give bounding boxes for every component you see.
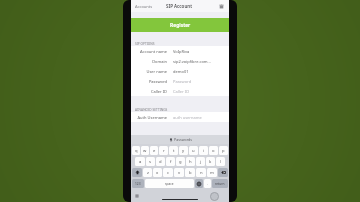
button[interactable]: space xyxy=(145,179,194,188)
staticText: Register xyxy=(170,22,191,29)
staticText: o xyxy=(212,148,215,154)
staticText: auth username xyxy=(173,115,202,120)
staticText: i xyxy=(203,148,205,154)
staticText: q xyxy=(135,148,138,154)
staticText: 123 xyxy=(135,182,141,186)
staticText: Account name xyxy=(140,49,167,54)
staticText: h xyxy=(189,159,192,165)
staticText: Password xyxy=(148,79,167,84)
button[interactable]: t xyxy=(169,146,178,155)
button[interactable]: Password xyxy=(131,76,229,86)
staticText: r xyxy=(163,148,165,154)
button[interactable]: g xyxy=(176,157,185,166)
staticText: k xyxy=(209,159,212,165)
staticText: Caller ID xyxy=(150,89,167,94)
button[interactable]: User name xyxy=(131,66,229,76)
staticText: w xyxy=(143,148,147,154)
staticText: return xyxy=(215,182,225,186)
button[interactable]: Dictation xyxy=(210,192,219,201)
staticText: Domain xyxy=(152,59,167,64)
button[interactable]: y xyxy=(179,146,188,155)
button[interactable]: k xyxy=(206,157,215,166)
staticText: Auth Username xyxy=(137,115,167,120)
button[interactable]: Emoji xyxy=(195,179,203,188)
staticText: User name xyxy=(146,69,167,74)
button[interactable]: f xyxy=(166,157,175,166)
button[interactable]: m xyxy=(207,168,217,177)
staticText: ADVANCED SETTINGS xyxy=(135,108,168,112)
staticText: SIP Account xyxy=(166,3,192,9)
button[interactable]: . xyxy=(204,179,211,188)
button[interactable]: n xyxy=(196,168,206,177)
staticText: Password xyxy=(173,79,192,84)
button[interactable]: a xyxy=(135,157,145,166)
button[interactable]: Account name xyxy=(131,46,229,56)
staticText: s xyxy=(149,159,152,165)
button[interactable]: u xyxy=(189,146,198,155)
button[interactable]: Register xyxy=(131,18,229,32)
button[interactable]: Passwords xyxy=(131,135,229,144)
button[interactable]: c xyxy=(163,168,173,177)
staticText: b xyxy=(189,170,192,176)
button[interactable]: z xyxy=(143,168,152,177)
button[interactable]: l xyxy=(216,157,225,166)
staticText: e xyxy=(153,148,156,154)
staticText: y xyxy=(182,148,185,154)
button[interactable]: Domain xyxy=(131,56,229,66)
button[interactable]: h xyxy=(186,157,195,166)
staticText: d xyxy=(159,159,162,165)
staticText: Accounts xyxy=(135,4,153,9)
staticText: v xyxy=(178,170,181,176)
button[interactable]: j xyxy=(196,157,205,166)
button[interactable]: return xyxy=(212,179,228,188)
button[interactable]: Accounts xyxy=(134,4,154,9)
button[interactable]: x xyxy=(153,168,162,177)
button[interactable]: Auth Username xyxy=(131,112,229,122)
staticText: SIP OPTIONS xyxy=(135,42,155,46)
staticText: z xyxy=(147,170,149,176)
staticText: l xyxy=(220,159,222,165)
staticText: x xyxy=(156,170,159,176)
staticText: p xyxy=(222,148,225,154)
staticText: Caller ID xyxy=(173,89,190,94)
staticText: sip2.voipfibre.com... xyxy=(173,59,211,64)
staticText: f xyxy=(170,159,172,165)
button[interactable]: b xyxy=(185,168,195,177)
staticText: t xyxy=(173,148,175,154)
staticText: Passwords xyxy=(174,137,192,142)
button[interactable]: w xyxy=(141,146,149,155)
button[interactable]: Shift xyxy=(132,168,142,177)
button[interactable]: Caller ID xyxy=(131,86,229,96)
button[interactable]: o xyxy=(209,146,218,155)
button[interactable]: i xyxy=(199,146,208,155)
staticText: u xyxy=(192,148,195,154)
button[interactable]: v xyxy=(174,168,184,177)
staticText: space xyxy=(165,182,174,186)
button[interactable]: e xyxy=(150,146,158,155)
staticText: VoIpRiva xyxy=(173,49,190,54)
staticText: j xyxy=(200,159,202,165)
button[interactable]: Backspace xyxy=(218,168,228,177)
staticText: m xyxy=(210,170,214,176)
staticText: n xyxy=(200,170,203,176)
button[interactable]: Emoji keyboard xyxy=(134,193,140,199)
button[interactable]: s xyxy=(146,157,155,166)
button[interactable]: p xyxy=(219,146,228,155)
staticText: demo01 xyxy=(173,69,189,74)
button[interactable]: Delete account xyxy=(216,1,226,11)
staticText: g xyxy=(179,159,182,165)
button[interactable]: 123 xyxy=(132,179,144,188)
staticText: . xyxy=(207,181,208,186)
button[interactable]: r xyxy=(159,146,168,155)
button[interactable]: q xyxy=(132,146,140,155)
button[interactable]: d xyxy=(156,157,165,166)
staticText: a xyxy=(139,159,142,165)
staticText: c xyxy=(167,170,170,176)
